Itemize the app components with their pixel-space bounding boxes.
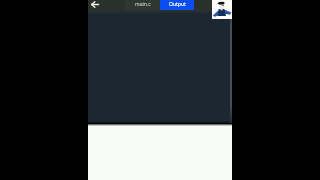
button[interactable]: Profile (212, 0, 232, 19)
button[interactable]: Output (160, 0, 194, 10)
button[interactable]: main.c (125, 0, 160, 10)
staticText: Output (169, 1, 186, 8)
staticText: main.c (135, 1, 151, 8)
button[interactable]: Back (88, 0, 104, 10)
